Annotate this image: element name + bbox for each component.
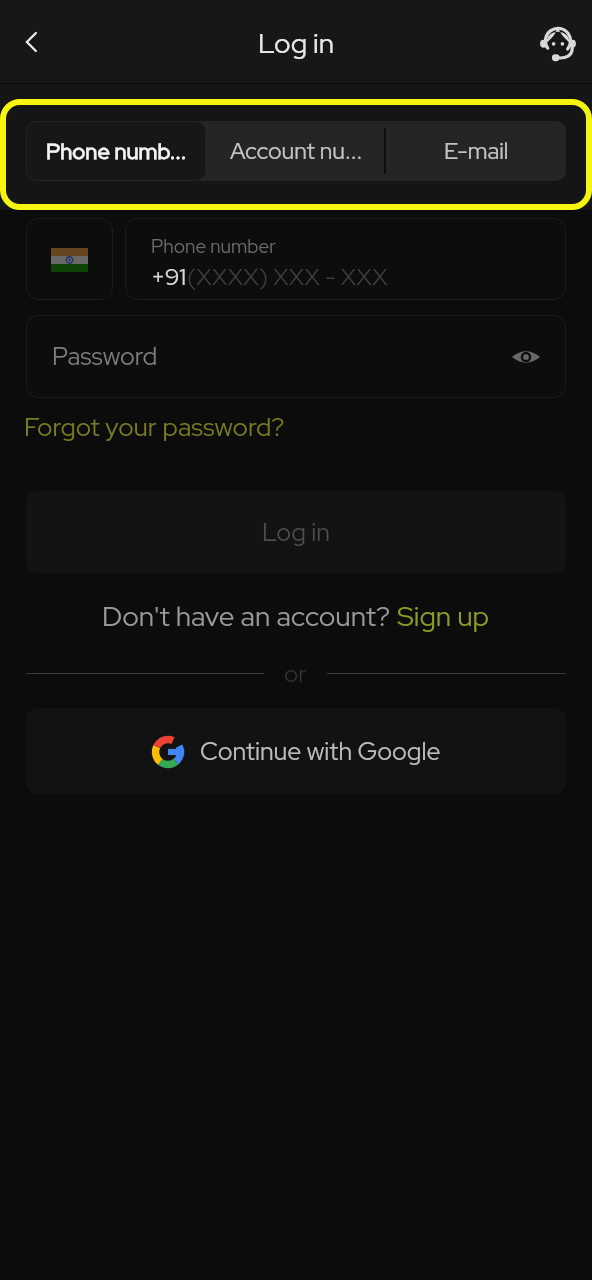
- staticText: Don't have an account?: [102, 597, 397, 634]
- staticText: Phone numb...: [46, 137, 187, 166]
- button[interactable]: E-mail: [386, 121, 566, 181]
- button[interactable]: Continue with Google: [26, 708, 566, 794]
- button[interactable]: Forgot your password?: [24, 410, 285, 444]
- button[interactable]: Customer support: [530, 14, 586, 70]
- button[interactable]: Phone numb...: [26, 121, 206, 181]
- staticText: Password: [52, 340, 158, 373]
- staticText: (XXXX) XXX - XXX: [187, 261, 388, 293]
- button[interactable]: Password: [26, 315, 566, 398]
- button[interactable]: Back: [4, 14, 60, 70]
- staticText: Account nu...: [230, 136, 363, 166]
- staticText: Continue with Google: [200, 735, 441, 768]
- staticText: Log in: [262, 516, 330, 549]
- button[interactable]: Account nu...: [206, 121, 386, 181]
- button[interactable]: Log in: [26, 491, 566, 573]
- button[interactable]: Show password: [502, 333, 550, 381]
- button[interactable]: Sign up: [397, 597, 490, 634]
- button[interactable]: Phone number: [125, 218, 566, 300]
- staticText: E-mail: [444, 136, 509, 166]
- staticText: Log in: [258, 24, 335, 61]
- staticText: or: [284, 658, 307, 688]
- button[interactable]: Select country: [26, 218, 113, 300]
- staticText: Phone number: [151, 234, 276, 259]
- staticText: +91: [151, 261, 187, 293]
